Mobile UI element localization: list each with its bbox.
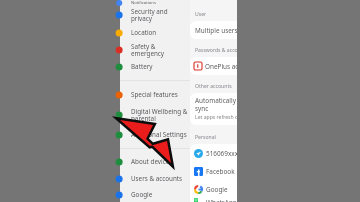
button[interactable]: Special features bbox=[120, 86, 190, 103]
button[interactable]: About device bbox=[120, 153, 190, 170]
staticText: Personal bbox=[195, 134, 216, 141]
other: Pointer arrow bbox=[0, 0, 360, 202]
staticText: Passwords & accounts bbox=[195, 47, 237, 54]
staticText: Location bbox=[131, 28, 157, 37]
staticText: Battery bbox=[131, 62, 153, 71]
staticText: Automatically sync personal account data bbox=[195, 96, 237, 113]
button[interactable]: Security and privacy bbox=[120, 6, 190, 24]
staticText: Notifications bbox=[131, 0, 156, 6]
button[interactable]: Multiple users bbox=[195, 21, 237, 39]
button[interactable]: WhatsApp bbox=[194, 198, 237, 202]
staticText: Facebook bbox=[206, 167, 235, 176]
button[interactable]: OnePlus account bbox=[194, 57, 237, 75]
staticText: OnePlus account bbox=[205, 62, 237, 71]
staticText: User bbox=[195, 11, 207, 18]
button[interactable]: Location bbox=[120, 24, 190, 41]
staticText: Google bbox=[131, 190, 153, 199]
button[interactable]: Digital Wellbeing & parental controls bbox=[120, 103, 190, 126]
staticText: Special features bbox=[131, 90, 178, 99]
staticText: Let apps refresh data bbox=[195, 114, 237, 121]
button[interactable]: Safety & emergency bbox=[120, 41, 190, 58]
staticText: Digital Wellbeing & parental controls bbox=[131, 107, 190, 123]
button[interactable]: Notifications bbox=[120, 0, 190, 6]
button[interactable]: Automatically sync personal account data bbox=[195, 96, 237, 121]
button[interactable]: Users & accounts bbox=[120, 170, 190, 187]
staticText: Google bbox=[206, 185, 228, 194]
button[interactable]: Battery bbox=[120, 58, 190, 75]
staticText: 516069xxxx bbox=[206, 149, 237, 158]
staticText: Multiple users bbox=[195, 26, 237, 35]
staticText: Users & accounts bbox=[131, 174, 183, 183]
button[interactable]: Facebook bbox=[194, 162, 237, 180]
button[interactable]: 516069xxxx bbox=[194, 144, 237, 162]
staticText: Security and privacy bbox=[131, 7, 190, 23]
staticText: Other accounts bbox=[195, 83, 232, 90]
button[interactable]: Google bbox=[120, 187, 190, 202]
staticText: Safety & emergency bbox=[131, 42, 190, 58]
button[interactable]: Additional Settings bbox=[120, 126, 190, 143]
staticText: WhatsApp bbox=[206, 198, 237, 202]
staticText: About device bbox=[131, 157, 170, 166]
button[interactable]: Google bbox=[194, 180, 237, 198]
staticText: Additional Settings bbox=[131, 130, 187, 139]
